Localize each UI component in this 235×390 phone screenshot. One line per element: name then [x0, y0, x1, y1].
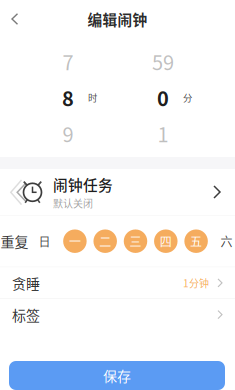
button[interactable]: 保存 [9, 361, 225, 390]
staticText: 保存 [103, 365, 131, 386]
staticText: 贪睡 [12, 273, 40, 293]
staticText: 二 [99, 232, 111, 250]
staticText: 重复 [0, 231, 28, 251]
button[interactable]: 闹钟任务 [0, 169, 235, 215]
button[interactable]: 标签 [0, 299, 235, 330]
staticText: 三 [129, 232, 141, 250]
button[interactable]: 三 [120, 226, 151, 256]
staticText: 默认关闭 [53, 196, 93, 210]
staticText: 8 [62, 83, 74, 112]
staticText: 1分钟 [183, 276, 209, 290]
staticText: 闹钟任务 [53, 174, 113, 195]
button[interactable]: 六 [211, 226, 235, 256]
button[interactable]: 贪睡 [0, 267, 235, 298]
staticText: 六 [220, 232, 232, 250]
staticText: 日 [39, 232, 51, 250]
staticText: 四 [160, 232, 172, 250]
staticText: 时 [88, 91, 97, 104]
button[interactable]: 二 [90, 226, 120, 256]
staticText: 一 [69, 232, 81, 250]
button[interactable]: 一 [60, 226, 90, 256]
staticText: 0 [157, 83, 169, 112]
button[interactable]: 日 [29, 226, 60, 256]
staticText: 7 [62, 47, 73, 76]
button[interactable]: Back [0, 0, 33, 38]
staticText: 五 [190, 232, 202, 250]
button[interactable]: 四 [151, 226, 181, 256]
button[interactable]: 五 [181, 226, 211, 256]
staticText: 59 [152, 47, 174, 76]
staticText: 标签 [12, 304, 40, 325]
staticText: 分 [183, 91, 192, 104]
staticText: 编辑闹钟 [87, 8, 147, 30]
staticText: 1 [157, 119, 168, 148]
staticText: 9 [62, 119, 73, 148]
